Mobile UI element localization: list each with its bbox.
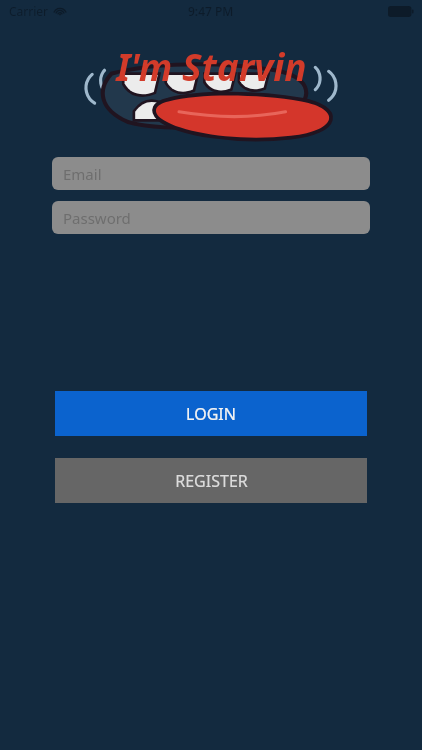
- button[interactable]: LOGIN: [55, 391, 367, 436]
- staticText: 9:47 PM: [188, 3, 234, 19]
- staticText: Email: [63, 164, 102, 184]
- staticText: I'm Starvin: [116, 41, 307, 91]
- staticText: LOGIN: [186, 403, 236, 425]
- button[interactable]: Password: [52, 201, 370, 234]
- button[interactable]: Email: [52, 157, 370, 190]
- staticText: Carrier: [9, 3, 49, 19]
- staticText: REGISTER: [175, 470, 248, 492]
- staticText: Password: [63, 208, 131, 228]
- button[interactable]: REGISTER: [55, 458, 367, 503]
